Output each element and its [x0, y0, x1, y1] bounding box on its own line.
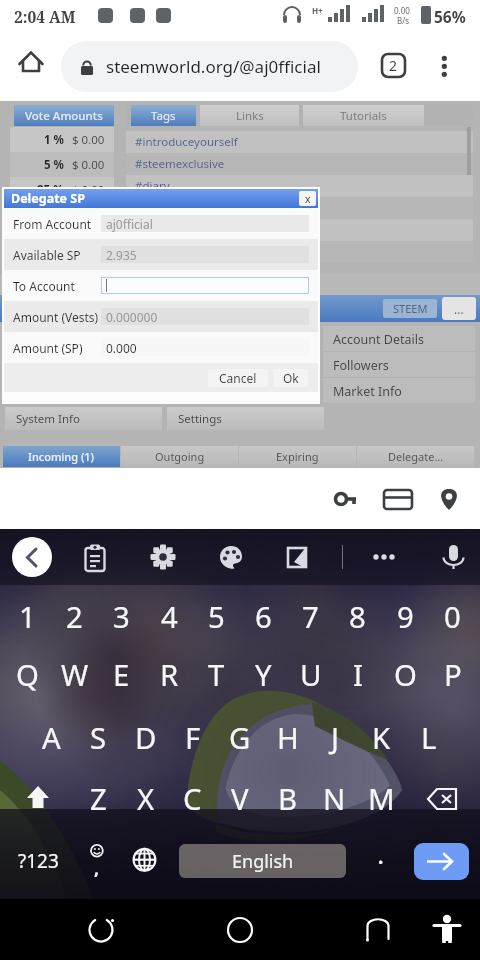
button[interactable]: W [51, 651, 98, 699]
button[interactable]: Go [414, 843, 469, 880]
staticText: 2:04 AM [14, 6, 76, 27]
button[interactable]: . [359, 839, 403, 883]
button[interactable]: Emoji [75, 839, 119, 883]
button[interactable]: Accessibility [424, 907, 470, 953]
button[interactable]: 9 [382, 593, 429, 641]
staticText: Z [90, 779, 107, 819]
button[interactable]: L [405, 714, 452, 762]
button[interactable]: Back [12, 537, 52, 577]
button[interactable]: F [169, 714, 216, 762]
button[interactable]: Back [355, 907, 401, 953]
button[interactable]: 8 [334, 593, 381, 641]
button[interactable]: Ok [274, 369, 308, 387]
button[interactable]: X [122, 775, 169, 823]
staticText: 9 [397, 597, 414, 637]
staticText: 2.935 [106, 247, 137, 263]
button[interactable]: Change language [122, 839, 166, 883]
button[interactable]: K [358, 714, 405, 762]
button[interactable]: 1 [4, 593, 51, 641]
staticText: Outgoing [155, 449, 205, 464]
button[interactable]: 7 [287, 593, 334, 641]
button[interactable]: E [98, 651, 145, 699]
button[interactable]: V [216, 775, 263, 823]
button[interactable]: C [169, 775, 216, 823]
button[interactable]: Voice input [434, 538, 472, 576]
button[interactable]: J [311, 714, 358, 762]
button[interactable]: Backspace [419, 776, 465, 822]
button[interactable]: R [146, 651, 193, 699]
button[interactable]: Addresses [432, 482, 466, 516]
button[interactable]: Passwords [330, 482, 364, 516]
button[interactable]: Recents [78, 907, 124, 953]
staticText: Amount (Vests) [13, 309, 99, 325]
button[interactable]: I [334, 651, 381, 699]
staticText: 2 [389, 56, 398, 75]
button[interactable]: H [264, 714, 311, 762]
button[interactable]: Payment methods [381, 482, 415, 516]
button[interactable]: More [442, 297, 476, 320]
button[interactable]: steemworld.org/@aj0fficial [61, 41, 358, 92]
button[interactable]: Delegate... [357, 446, 474, 467]
button[interactable]: STEEM [383, 299, 437, 318]
button[interactable]: 4 [146, 593, 193, 641]
button[interactable]: Vote Amounts [14, 105, 114, 126]
button[interactable]: Settings [144, 538, 182, 576]
button[interactable]: System Info [5, 407, 162, 430]
button[interactable]: Home [217, 907, 263, 953]
button[interactable]: #steem [126, 197, 473, 219]
button[interactable]: P [429, 651, 476, 699]
button[interactable]: Q [4, 651, 51, 699]
button[interactable]: S [75, 714, 122, 762]
button[interactable]: #introduceyourself [126, 131, 473, 153]
button[interactable]: Settings [167, 407, 324, 430]
button[interactable]: U [287, 651, 334, 699]
button[interactable]: O [382, 651, 429, 699]
button[interactable]: Expiring [239, 446, 356, 467]
button[interactable]: More options [365, 538, 403, 576]
button[interactable]: Tutorials [303, 105, 424, 126]
button[interactable]: #steemexclusive [126, 153, 473, 175]
button[interactable]: 5 [193, 593, 240, 641]
button[interactable]: G [216, 714, 263, 762]
button[interactable]: 2 [51, 593, 98, 641]
button[interactable]: Incoming (1) [3, 446, 120, 467]
button[interactable]: Cancel [208, 369, 268, 387]
button[interactable]: #diary [126, 175, 473, 197]
button[interactable]: English [179, 844, 346, 878]
button[interactable]: M [358, 775, 405, 823]
button[interactable]: #photography [126, 219, 473, 241]
staticText: Account Details [333, 331, 424, 348]
button[interactable]: Account Details [323, 326, 475, 352]
button[interactable]: Outgoing [121, 446, 238, 467]
button[interactable]: Tags [131, 105, 196, 126]
button[interactable]: 3 [98, 593, 145, 641]
button[interactable]: Theme [212, 538, 250, 576]
button[interactable]: #life [126, 241, 473, 263]
button[interactable]: Clipboard [76, 538, 114, 576]
button[interactable]: D [122, 714, 169, 762]
button[interactable]: Market Info [323, 378, 475, 404]
button[interactable]: A [28, 714, 75, 762]
button[interactable]: Links [200, 105, 299, 126]
button[interactable]: More options [432, 53, 457, 78]
staticText: Incoming (1) [28, 449, 95, 464]
button[interactable]: ?123 [10, 839, 66, 883]
staticText: Expiring [276, 449, 319, 464]
button[interactable]: Shift [15, 776, 61, 822]
button[interactable]: Close [299, 191, 316, 206]
button[interactable]: Resize keyboard [279, 538, 317, 576]
button[interactable]: B [264, 775, 311, 823]
button[interactable]: T [193, 651, 240, 699]
button[interactable]: 0 [429, 593, 476, 641]
staticText: Market Info [333, 383, 402, 400]
button[interactable]: Tabs: 2 [381, 53, 406, 78]
staticText: B [278, 779, 298, 819]
button[interactable]: Z [75, 775, 122, 823]
staticText: R [160, 655, 179, 695]
button[interactable]: Home [12, 41, 50, 79]
button[interactable]: Y [240, 651, 287, 699]
button[interactable]: 6 [240, 593, 287, 641]
button[interactable]: N [311, 775, 358, 823]
button[interactable]: Followers [323, 352, 475, 378]
staticText: ?123 [18, 848, 59, 874]
